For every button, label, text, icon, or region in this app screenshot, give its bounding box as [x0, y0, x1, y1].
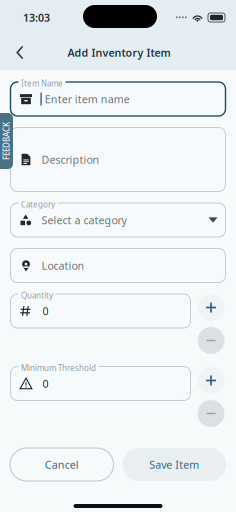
- staticText: Item Name: [21, 78, 63, 89]
- staticText: 0: [42, 376, 48, 391]
- staticText: 13:03: [23, 10, 50, 25]
- staticText: Add Inventory Item: [67, 45, 170, 60]
- button[interactable]: Decrease Quantity: [197, 327, 224, 354]
- button[interactable]: Save Item: [122, 448, 226, 481]
- staticText: Cancel: [45, 457, 79, 472]
- button[interactable]: Increase Quantity: [197, 294, 224, 321]
- button[interactable]: Increase Minimum Threshold: [197, 367, 224, 394]
- staticText: Save Item: [149, 457, 199, 472]
- staticText: Category: [21, 199, 55, 210]
- staticText: Location: [41, 258, 84, 273]
- button[interactable]: Cancel: [10, 448, 113, 481]
- staticText: Quantity: [21, 290, 53, 301]
- staticText: Enter item name: [45, 92, 130, 106]
- button[interactable]: Decrease Minimum Threshold: [197, 400, 224, 427]
- button[interactable]: Feedback: [0, 113, 13, 169]
- button[interactable]: Back: [6, 38, 34, 66]
- staticText: Minimum Threshold: [21, 362, 96, 373]
- staticText: Description: [41, 152, 99, 167]
- staticText: FEEDBACK: [0, 136, 25, 146]
- staticText: 0: [42, 304, 48, 318]
- staticText: Select a category: [41, 213, 126, 227]
